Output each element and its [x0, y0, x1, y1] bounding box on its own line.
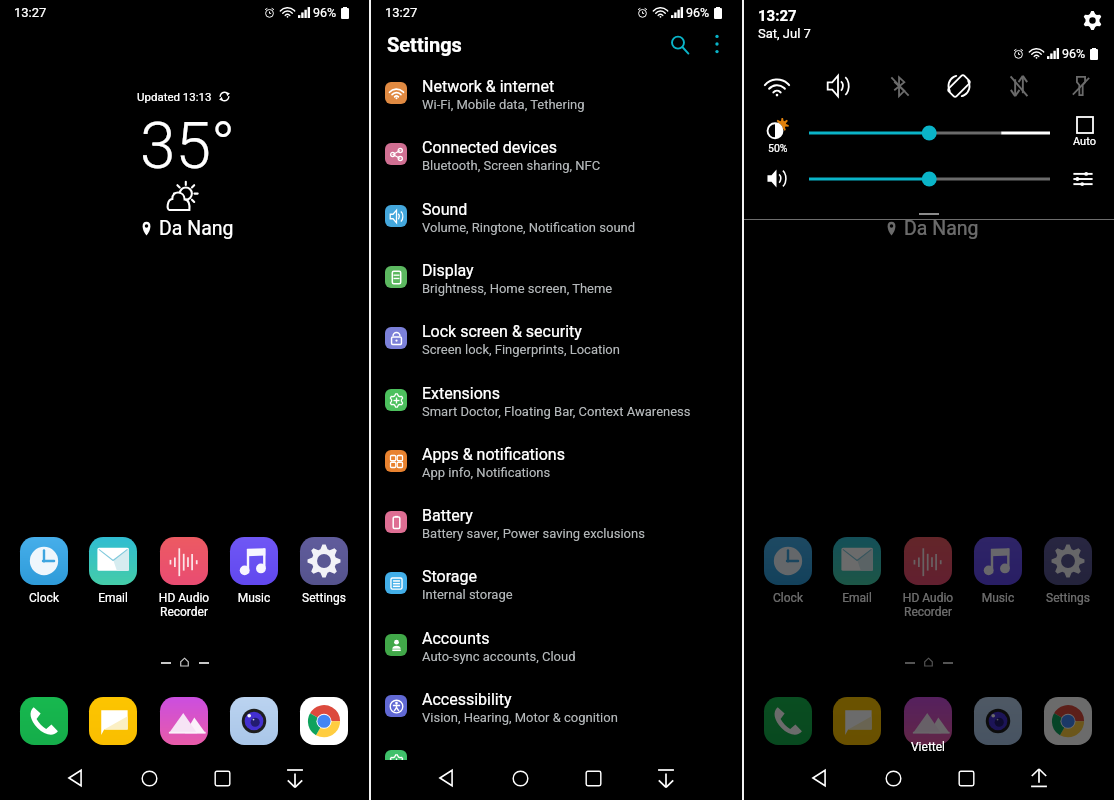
staticText: Lock screen & security	[422, 322, 582, 341]
staticText: Viettel	[898, 740, 958, 754]
staticText: Smart Doctor, Floating Bar, Context Awar…	[422, 404, 691, 419]
button[interactable]: Phone	[759, 695, 817, 747]
button[interactable]: Gallery	[899, 695, 957, 747]
staticText: HD Audio Recorder	[155, 591, 213, 619]
staticText: Settings	[295, 591, 353, 605]
button[interactable]: Apps & notifications	[371, 430, 742, 491]
button[interactable]: Chrome	[295, 695, 353, 747]
staticText: Connected devices	[422, 138, 557, 157]
button[interactable]: Recents	[573, 758, 613, 798]
button[interactable]: Music	[225, 535, 283, 615]
staticText: Email	[84, 591, 142, 605]
button[interactable]: Back	[55, 758, 95, 798]
staticText: 13:27	[14, 5, 47, 20]
button[interactable]: Extensions	[371, 369, 742, 430]
staticText: Da Nang	[159, 217, 234, 240]
button[interactable]: Recents	[202, 758, 242, 798]
staticText: Battery	[422, 506, 473, 525]
staticText: Brightness, Home screen, Theme	[422, 281, 613, 296]
staticText: 13:27	[385, 5, 418, 20]
button[interactable]: HD Audio Recorder	[155, 535, 213, 615]
button[interactable]: Auto	[1060, 117, 1108, 157]
button[interactable]: Home	[129, 758, 169, 798]
button[interactable]: Messages	[84, 695, 142, 747]
staticText: Da Nang	[904, 217, 979, 240]
staticText: Extensions	[422, 384, 500, 403]
button[interactable]: Home	[873, 758, 913, 798]
staticText: Screen lock, Fingerprints, Location	[422, 342, 620, 357]
button[interactable]: Sound	[371, 185, 742, 246]
staticText: Settings	[1039, 591, 1097, 605]
staticText: Battery saver, Power saving exclusions	[422, 526, 645, 541]
button[interactable]: Bluetooth	[876, 64, 924, 108]
button[interactable]: Accounts	[371, 614, 742, 675]
staticText: 50%	[768, 142, 788, 154]
button[interactable]: Camera	[969, 695, 1027, 747]
button[interactable]: Hide navigation bar	[646, 758, 686, 798]
button[interactable]: Back	[426, 758, 466, 798]
staticText: 35°	[140, 109, 236, 184]
staticText: Sound	[422, 200, 468, 219]
button[interactable]: Display	[371, 246, 742, 307]
button[interactable]: Network & internet	[371, 62, 742, 123]
button[interactable]: Home	[500, 758, 540, 798]
button[interactable]: Back	[799, 758, 839, 798]
button[interactable]: Sound settings	[1064, 166, 1102, 192]
button[interactable]: Battery	[371, 491, 742, 552]
staticText: Volume, Ringtone, Notification sound	[422, 220, 636, 235]
staticText: Music	[969, 591, 1027, 605]
button[interactable]: Sound	[814, 64, 862, 108]
button[interactable]: Camera	[225, 695, 283, 747]
button[interactable]: Clock	[15, 535, 73, 615]
button[interactable]: Flashlight	[1057, 64, 1105, 108]
button[interactable]: Chrome	[1039, 695, 1097, 747]
staticText: Accessibility	[422, 690, 512, 709]
button[interactable]	[371, 730, 742, 760]
button[interactable]: Accessibility	[371, 675, 742, 736]
staticText: Wi-Fi, Mobile data, Tethering	[422, 97, 585, 112]
button[interactable]: Connected devices	[371, 123, 742, 184]
staticText: Sat, Jul 7	[758, 26, 811, 41]
button[interactable]: HD Audio Recorder	[899, 535, 957, 615]
button[interactable]: Email	[828, 535, 886, 615]
staticText: 96%	[686, 5, 710, 20]
button[interactable]: Auto rotate	[935, 64, 983, 108]
button[interactable]: Settings	[1039, 535, 1097, 615]
button[interactable]: Phone	[15, 695, 73, 747]
button[interactable]: Email	[84, 535, 142, 615]
button[interactable]: Recents	[946, 758, 986, 798]
button[interactable]: Mobile data	[995, 64, 1043, 108]
staticText: 96%	[313, 5, 337, 20]
staticText: Auto-sync accounts, Cloud	[422, 649, 576, 664]
staticText: Clock	[15, 591, 73, 605]
staticText: 96%	[1062, 46, 1086, 61]
staticText: App info, Notifications	[422, 465, 551, 480]
button[interactable]: Gallery	[155, 695, 213, 747]
staticText: Settings	[387, 33, 462, 56]
button[interactable]: Clock	[759, 535, 817, 615]
staticText: Auto	[1073, 135, 1096, 148]
button[interactable]: Hide navigation bar	[275, 758, 315, 798]
staticText: Display	[422, 261, 474, 280]
button[interactable]: Settings	[295, 535, 353, 615]
staticText: Storage	[422, 567, 477, 586]
staticText: Accounts	[422, 629, 490, 648]
button[interactable]: Messages	[828, 695, 886, 747]
button[interactable]: Storage	[371, 552, 742, 613]
button[interactable]: Lock screen & security	[371, 307, 742, 368]
staticText: Network & internet	[422, 77, 555, 96]
button[interactable]: Music	[969, 535, 1027, 615]
button[interactable]: Search	[665, 30, 695, 60]
staticText: Vision, Hearing, Motor & cognition	[422, 710, 618, 725]
button[interactable]: Show navigation bar	[1019, 758, 1059, 798]
button[interactable]: Open settings	[1078, 6, 1106, 34]
staticText: Music	[225, 591, 283, 605]
staticText: Bluetooth, Screen sharing, NFC	[422, 158, 601, 173]
button[interactable]: Wi-Fi	[753, 64, 801, 108]
button[interactable]: More options	[703, 30, 731, 58]
staticText: HD Audio Recorder	[899, 591, 957, 619]
staticText: 13:27	[758, 7, 797, 25]
staticText: Internal storage	[422, 587, 513, 602]
staticText: Updated 13:13	[137, 90, 212, 103]
staticText: Apps & notifications	[422, 445, 565, 464]
